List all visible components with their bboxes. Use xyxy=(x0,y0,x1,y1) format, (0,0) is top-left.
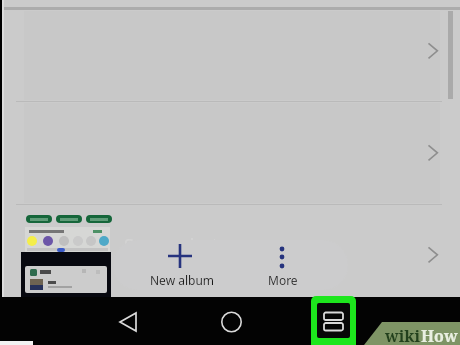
button[interactable] xyxy=(26,215,52,223)
button[interactable]: Recent apps xyxy=(311,296,356,345)
button[interactable]: More xyxy=(230,240,348,290)
button[interactable] xyxy=(56,215,82,223)
button[interactable]: Open xyxy=(418,241,446,269)
button[interactable]: App xyxy=(73,236,83,246)
button[interactable]: App xyxy=(86,236,96,246)
button[interactable]: App xyxy=(43,236,53,246)
staticText: More xyxy=(268,272,298,288)
staticText: New album xyxy=(150,272,215,288)
staticText: Screenshots xyxy=(124,233,227,258)
staticText: wiki xyxy=(385,325,421,345)
button[interactable]: App xyxy=(59,236,69,246)
button[interactable]: New album xyxy=(113,240,230,290)
button[interactable]: App xyxy=(99,236,109,246)
button[interactable]: Open xyxy=(418,37,446,65)
button[interactable]: Open xyxy=(418,139,446,167)
button[interactable]: Home xyxy=(219,310,244,335)
button[interactable]: App xyxy=(27,236,37,246)
button[interactable]: Back xyxy=(118,310,142,334)
button[interactable] xyxy=(86,215,112,223)
staticText: How xyxy=(421,325,458,345)
